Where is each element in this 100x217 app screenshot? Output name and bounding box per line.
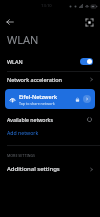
button[interactable]: WLAN on: [80, 58, 93, 65]
staticText: 13:10: [41, 3, 52, 9]
button[interactable]: Eifel-Netzwerk: [5, 89, 95, 109]
button[interactable]: Network details: [83, 95, 91, 103]
button[interactable]: Back: [3, 15, 17, 29]
button[interactable]: Add network: [0, 126, 100, 139]
staticText: Eifel-Netzwerk: [19, 93, 58, 100]
staticText: Additional settings: [7, 165, 89, 173]
staticText: Tap to share network: [19, 101, 55, 106]
button[interactable]: Additional settings: [0, 162, 100, 176]
staticText: WLAN: [7, 58, 80, 65]
staticText: WLAN: [7, 32, 39, 47]
staticText: Add network: [7, 129, 39, 136]
staticText: Available networks: [7, 116, 85, 123]
staticText: MORE SETTINGS: [7, 153, 36, 158]
staticText: Network acceleration: [7, 76, 89, 83]
button[interactable]: Network acceleration: [0, 72, 100, 87]
button[interactable]: Scan QR code: [82, 15, 96, 29]
button[interactable]: Refresh networks: [85, 115, 94, 124]
button[interactable]: WLAN: [0, 53, 100, 69]
